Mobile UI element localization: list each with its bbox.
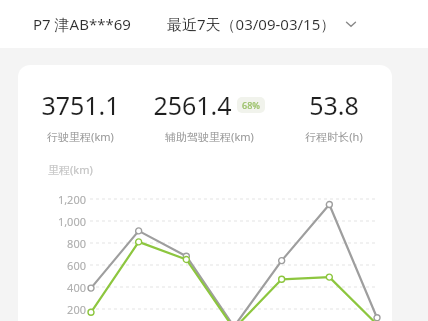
staticText: 1,000 [57,214,86,229]
staticText: 53.8 [309,88,359,122]
button[interactable]: 最近7天（03/09-03/15） [167,14,358,34]
staticText: 68% [242,99,260,111]
staticText: 最近7天（03/09-03/15） [167,14,336,34]
staticText: 600 [67,258,86,273]
button[interactable]: 53.8 [277,88,390,144]
staticText: 800 [67,236,86,251]
staticText: 400 [67,280,86,295]
staticText: 2561.4 [153,88,232,122]
staticText: 200 [67,302,86,317]
staticText: 1,200 [57,192,86,207]
other: Change date range [344,17,358,31]
staticText: 里程(km) [48,162,93,177]
staticText: P7 津AB***69 [33,14,131,34]
button[interactable]: 2561.4 [141,88,277,144]
staticText: 辅助驾驶里程(km) [165,129,254,144]
staticText: 3751.1 [41,88,120,122]
button[interactable]: P7 津AB***69 [33,14,131,34]
staticText: 行程时长(h) [305,129,363,144]
button[interactable]: 3751.1 [20,88,141,144]
staticText: 行驶里程(km) [47,129,114,144]
